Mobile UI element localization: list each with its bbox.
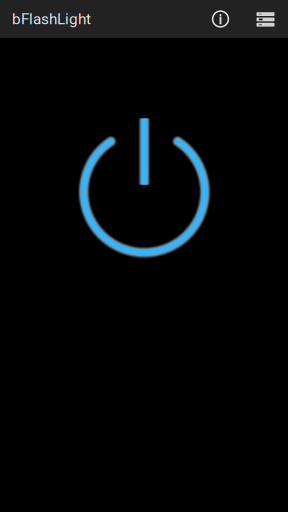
- staticText: bFlashLight: [12, 10, 91, 28]
- button[interactable]: Menu: [243, 0, 288, 38]
- button[interactable]: Toggle flashlight: [54, 102, 234, 282]
- button[interactable]: About: [198, 0, 243, 38]
